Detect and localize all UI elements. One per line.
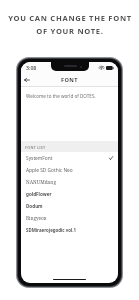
staticText: FONT LIST	[25, 145, 46, 150]
button[interactable]: Dodum	[21, 200, 118, 212]
button[interactable]: Welcome to the world of DOTES.	[21, 87, 118, 141]
button[interactable]: SDMiraerojegodic vol.1	[21, 224, 118, 236]
staticText: OF YOUR NOTE.	[36, 26, 104, 36]
staticText: Dodum	[26, 203, 43, 209]
staticText: SDMiraerojegodic vol.1	[26, 227, 77, 233]
button[interactable]: SystemFont	[21, 152, 118, 164]
button[interactable]: Bingyeon	[21, 212, 118, 224]
button[interactable]: Back	[21, 74, 33, 86]
staticText: Welcome to the world of DOTES.	[26, 93, 96, 99]
button[interactable]: Apple SD Gothic Neo	[21, 164, 118, 176]
staticText: Apple SD Gothic Neo	[26, 167, 73, 174]
staticText: goldFlower	[26, 191, 52, 197]
staticText: Bingyeon	[26, 215, 47, 221]
staticText: YOU CAN CHANGE THE FONT	[8, 13, 132, 23]
button[interactable]: goldFlower	[21, 188, 118, 200]
staticText: NANUMdang	[26, 179, 56, 186]
staticText: FONT	[61, 76, 78, 84]
staticText: 3:08	[26, 64, 37, 71]
button[interactable]: NANUMdang	[21, 176, 118, 188]
staticText: SystemFont	[26, 155, 53, 162]
